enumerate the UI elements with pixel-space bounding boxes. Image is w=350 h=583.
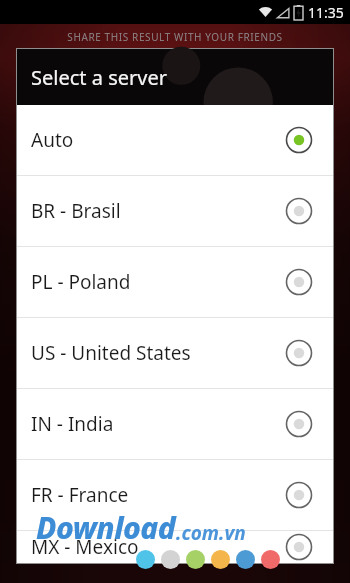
other: Selected (285, 126, 313, 154)
staticText: Select a server (31, 64, 167, 91)
button[interactable]: PL - Poland (17, 247, 333, 317)
other: Not selected (285, 410, 313, 438)
button[interactable]: MX - Mexico (17, 531, 333, 563)
button[interactable]: BR - Brasil (17, 176, 333, 246)
staticText: MX - Mexico (31, 534, 139, 560)
staticText: .com.vn (176, 520, 246, 546)
button[interactable]: US - United States (17, 318, 333, 388)
button[interactable]: FR - France (17, 460, 333, 530)
other: Not selected (285, 268, 313, 296)
staticText: PL - Poland (31, 269, 131, 295)
staticText: Download (36, 507, 176, 548)
other: Not selected (285, 197, 313, 225)
staticText: FR - France (31, 482, 129, 508)
other: Not selected (285, 481, 313, 509)
staticText: US - United States (31, 340, 191, 366)
staticText: 11:35 (308, 3, 344, 22)
button[interactable]: Auto (17, 105, 333, 175)
staticText: BR - Brasil (31, 198, 121, 224)
button[interactable]: IN - India (17, 389, 333, 459)
staticText: Auto (31, 127, 74, 153)
staticText: IN - India (31, 411, 114, 437)
other: Not selected (285, 339, 313, 367)
other: Not selected (285, 533, 313, 561)
staticText: SHARE THIS RESULT WITH YOUR FRIENDS (0, 30, 350, 44)
